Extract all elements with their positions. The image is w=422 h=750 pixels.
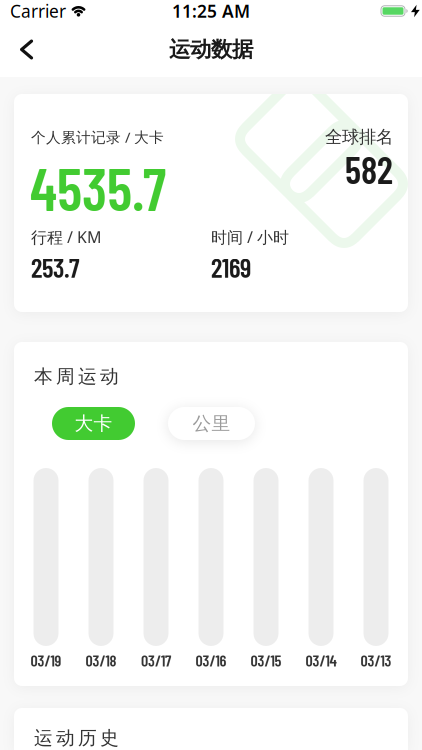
staticText: 时间 / 小时 xyxy=(211,226,289,248)
staticText: 个人累计记录 / 大卡 xyxy=(31,127,164,147)
staticText: 运动数据 xyxy=(169,36,253,63)
staticText: 2169 xyxy=(211,251,251,283)
staticText: 11:25 AM xyxy=(172,0,250,22)
staticText: 03/16 xyxy=(195,650,226,670)
staticText: 582 xyxy=(345,147,393,191)
staticText: 03/13 xyxy=(360,650,391,670)
staticText: 03/15 xyxy=(250,650,281,670)
button[interactable]: 大卡 xyxy=(52,407,135,440)
staticText: 运动历史 xyxy=(34,726,119,749)
staticText: 全球排名 xyxy=(325,126,393,148)
button[interactable]: 公里 xyxy=(168,407,255,440)
staticText: 03/18 xyxy=(85,650,116,670)
staticText: 本周运动 xyxy=(34,365,119,388)
staticText: 03/14 xyxy=(305,650,336,670)
staticText: 03/19 xyxy=(30,650,61,670)
staticText: 行程 / KM xyxy=(31,226,102,248)
staticText: 大卡 xyxy=(74,412,112,435)
staticText: 4535.7 xyxy=(30,152,166,223)
staticText: 03/17 xyxy=(141,650,171,670)
staticText: Carrier xyxy=(10,0,66,22)
staticText: 253.7 xyxy=(31,251,79,283)
staticText: 公里 xyxy=(192,412,230,435)
button[interactable]: Back xyxy=(0,22,33,76)
